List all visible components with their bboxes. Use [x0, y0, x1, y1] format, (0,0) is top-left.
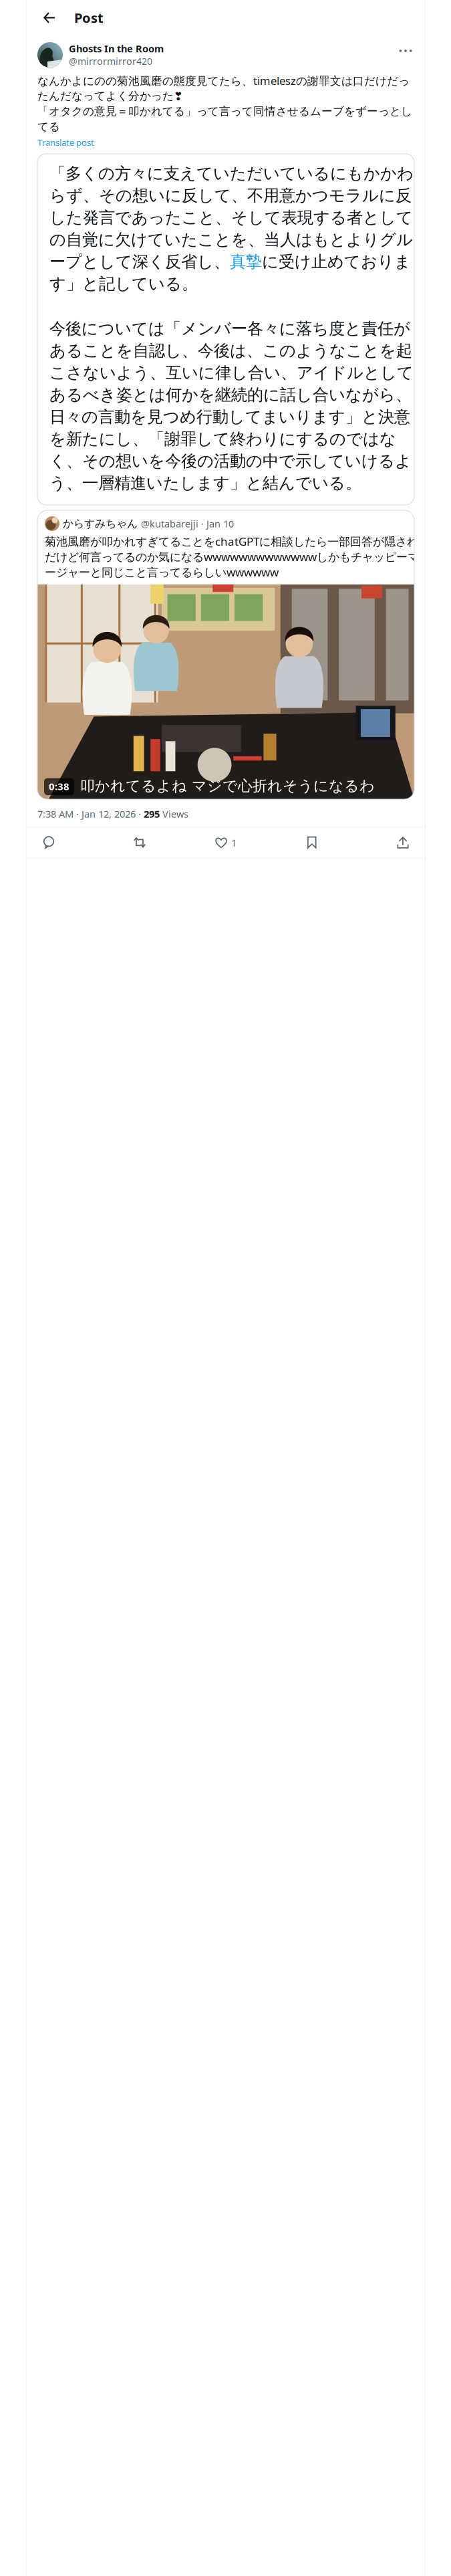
- staticText: Views: [160, 807, 188, 821]
- staticText: からすみちゃん: [63, 517, 138, 530]
- button[interactable]: Share: [388, 828, 418, 857]
- button[interactable]: からすみちゃん: [37, 510, 414, 799]
- staticText: @kutabarejji · Jan 10: [141, 517, 234, 530]
- staticText: らず、その想いに反して、不用意かつモラルに反: [49, 185, 412, 206]
- button[interactable]: Translate post: [37, 136, 94, 149]
- button[interactable]: Bookmark: [297, 828, 327, 857]
- staticText: の自覚に欠けていたことを、当人はもとよりグル: [49, 230, 413, 250]
- staticText: 7:38 AM · Jan 12, 2026 ·: [37, 807, 144, 821]
- button[interactable]: Ghosts In the Room: [37, 42, 164, 68]
- staticText: @mirrormirror420: [69, 55, 152, 68]
- staticText: した発言であったこと、そして表現する者として: [49, 208, 413, 228]
- staticText: 真摯: [230, 252, 262, 272]
- button[interactable]: Post: [74, 6, 104, 29]
- staticText: 295: [144, 807, 160, 821]
- button[interactable]: Reply: [33, 828, 64, 857]
- button[interactable]: More: [397, 42, 414, 60]
- staticText: あることを自認し、今後は、このようなことを起: [49, 341, 412, 361]
- staticText: 「オタクの意見＝叩かれてる」って言って同情させるムーブをずーっとし: [37, 104, 412, 118]
- staticText: を新たにし、「謝罪して終わりにするのではな: [49, 429, 396, 449]
- staticText: 「多くの方々に支えていただいているにもかかわ: [49, 163, 414, 184]
- staticText: く、その想いを今後の活動の中で示していけるよ: [49, 451, 412, 471]
- button[interactable]: Repost: [124, 828, 155, 857]
- button[interactable]: Like: [215, 828, 237, 857]
- staticText: なんかよにのの菊池風磨の態度見てたら、timeleszの謝罪文は口だけだっ: [37, 73, 410, 88]
- staticText: ープとして深く反省し、: [49, 252, 230, 272]
- staticText: す」と記している。: [49, 274, 198, 294]
- staticText: 0:38: [49, 779, 69, 793]
- staticText: 今後については「メンバー各々に落ち度と責任が: [49, 319, 410, 339]
- staticText: 1: [231, 836, 237, 849]
- staticText: に受け止めておりま: [262, 252, 411, 272]
- staticText: あるべき姿とは何かを継続的に話し合いながら、: [49, 385, 412, 405]
- staticText: てる: [37, 120, 60, 134]
- staticText: 叩かれてるよね マジで心折れそうになるわ: [80, 777, 375, 795]
- staticText: Translate post: [37, 136, 94, 148]
- staticText: だけど何言ってるのか気になるwwwwwwwwwwwwwしかもチャッピーマネ: [45, 549, 430, 564]
- staticText: こさないよう、互いに律し合い、アイドルとして: [49, 363, 414, 383]
- staticText: ージャーと同じこと言ってるらしいwwwwww: [45, 564, 279, 580]
- staticText: う、一層精進いたします」と結んでいる。: [49, 473, 361, 493]
- staticText: たんだなってよく分かった❣: [37, 89, 183, 103]
- button[interactable]: Back: [38, 6, 61, 29]
- staticText: Post: [74, 9, 104, 27]
- staticText: 日々の言動を見つめ行動してまいります」と決意: [49, 407, 410, 427]
- staticText: Ghosts In the Room: [69, 42, 164, 55]
- staticText: 菊池風磨が叩かれすぎてることをchatGPTに相談したら一部回答が隠されてるん: [45, 534, 451, 549]
